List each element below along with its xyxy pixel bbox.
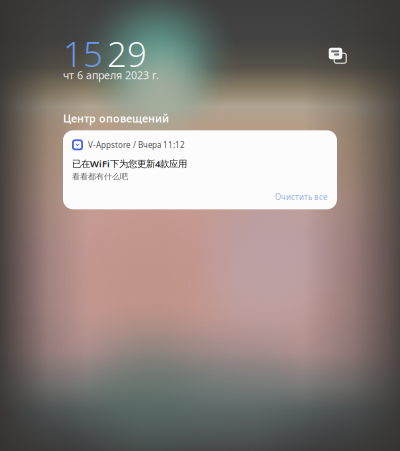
staticText: чт 6 апреля 2023 г. [63,68,159,82]
staticText: 已在WiFi下为您更新4款应用 [72,157,187,170]
staticText: Центр оповещений [63,111,169,125]
staticText: V-Appstore / Вчера 11:12 [88,139,185,150]
staticText: 29 [107,30,147,76]
staticText: 看看都有什么吧 [72,172,128,181]
staticText: 15 [63,30,103,76]
button[interactable]: V-Appstore / Вчера 11:12 [63,130,337,209]
button[interactable]: Сгруппировать уведомления [326,39,345,62]
staticText: Очистить все [275,192,327,202]
